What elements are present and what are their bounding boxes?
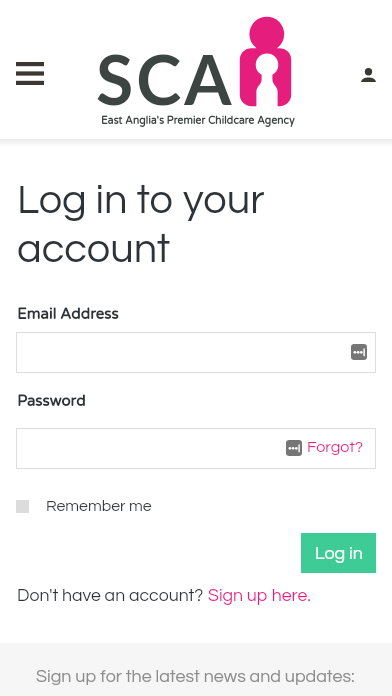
button[interactable]: Account	[353, 55, 383, 95]
staticText: Remember me	[46, 498, 152, 514]
button[interactable]: Remember me	[16, 498, 152, 514]
staticText: Don't have an account?	[17, 586, 208, 604]
staticText: SCA	[96, 38, 235, 120]
button[interactable]: Autofill	[16, 332, 376, 373]
staticText: Sign up for the latest news and updates:	[36, 667, 355, 685]
staticText: Log in	[315, 544, 363, 563]
button[interactable]: Menu	[7, 54, 51, 94]
staticText: Log in to your account	[17, 179, 297, 271]
button[interactable]: Autofill	[16, 428, 376, 469]
staticText: Sign up here.	[208, 586, 311, 604]
staticText: Email Address	[17, 305, 119, 323]
staticText: Forgot?	[307, 439, 363, 456]
other: Autofill	[351, 344, 367, 360]
other: Autofill	[286, 440, 302, 456]
button[interactable]: Log in	[301, 533, 376, 573]
staticText: Password	[17, 392, 86, 410]
button[interactable]: Forgot?	[307, 439, 363, 456]
staticText: East Anglia's Premier Childcare Agency	[101, 114, 295, 127]
button[interactable]: Sign up here.	[208, 586, 311, 604]
